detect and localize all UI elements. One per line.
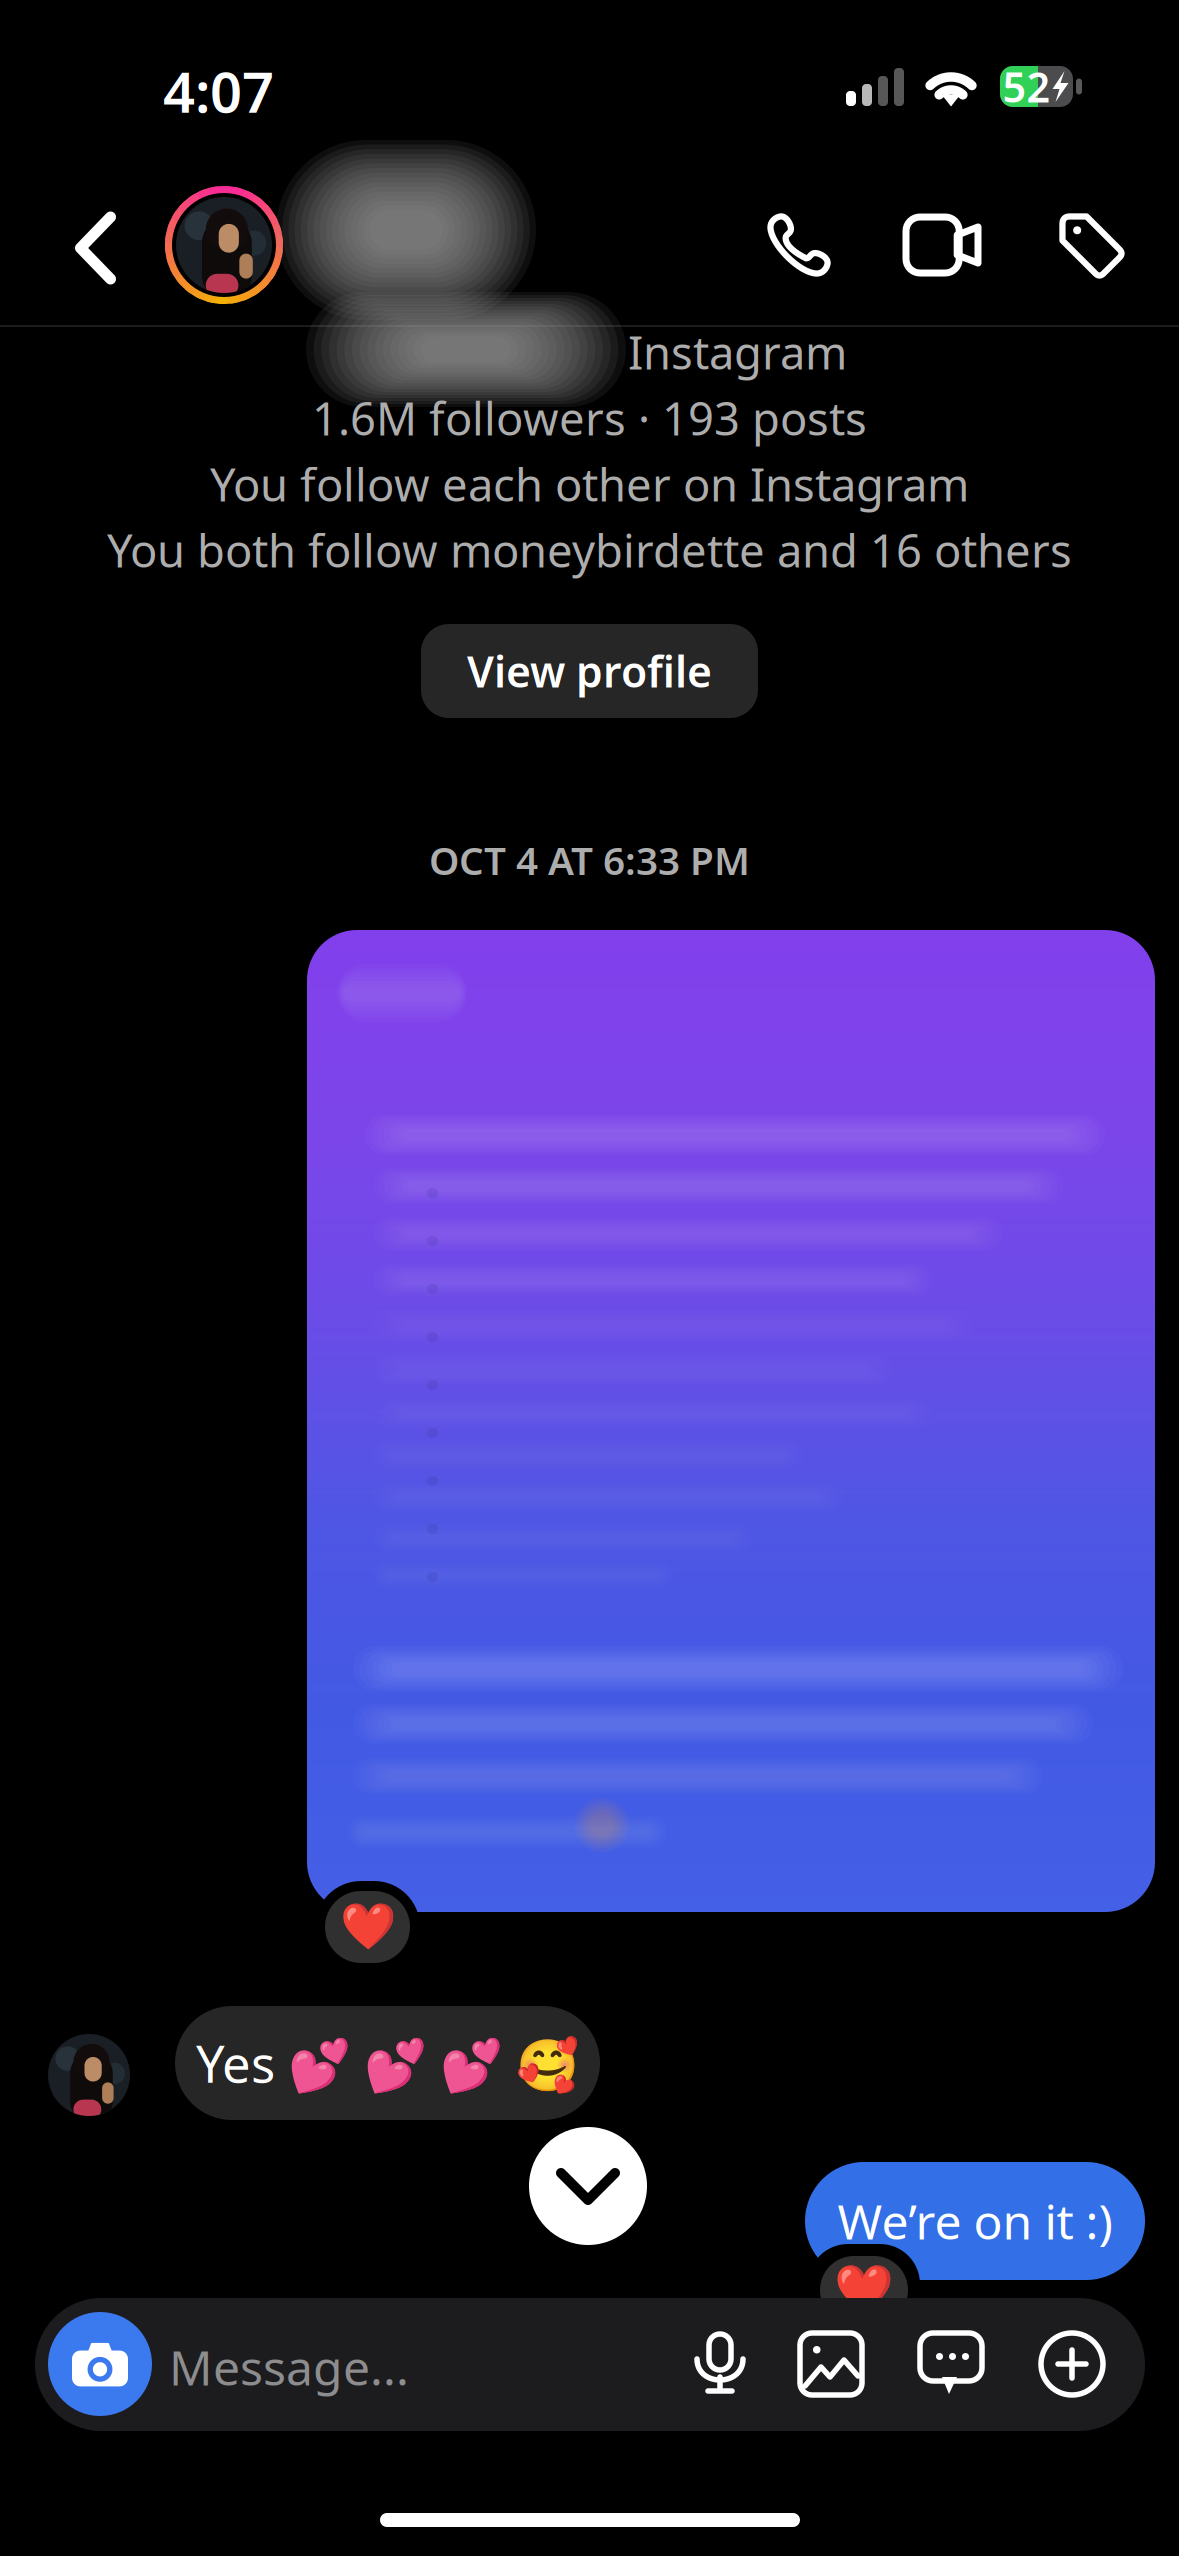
staticText: ❤️ [834,2263,894,2317]
staticText: ❤️ [339,1901,395,1953]
button[interactable]: Scroll to bottom [529,2127,647,2245]
staticText: 52 [1002,59,1050,114]
staticText: You follow each other on Instagram [210,454,969,514]
button[interactable]: Profile photo [163,184,285,306]
button[interactable]: Video call [906,217,982,273]
button[interactable]: Tag [1058,212,1124,278]
button[interactable]: Back [62,200,128,296]
staticText: 1.6M followers · 193 posts [312,388,867,448]
button[interactable]: More [1041,2333,1103,2395]
staticText: OCT 4 AT 6:33 PM [429,834,750,886]
button[interactable]: Voice message [689,2333,751,2395]
button[interactable]: Sticker [920,2333,982,2395]
button[interactable]: Photo [800,2333,862,2395]
staticText: View profile [467,643,712,699]
button[interactable]: Audio call [766,212,832,278]
staticText: Yes 💕 💕 💕 🥰 [196,2029,579,2097]
button[interactable]: Camera [48,2312,152,2416]
staticText: Message... [169,2335,409,2399]
staticText: You both follow moneybirdette and 16 oth… [107,520,1072,580]
staticText: We’re on it :) [837,2189,1112,2253]
button[interactable]: View profile [421,624,758,718]
staticText: Instagram [628,322,847,382]
staticText: 4:07 [163,54,274,128]
